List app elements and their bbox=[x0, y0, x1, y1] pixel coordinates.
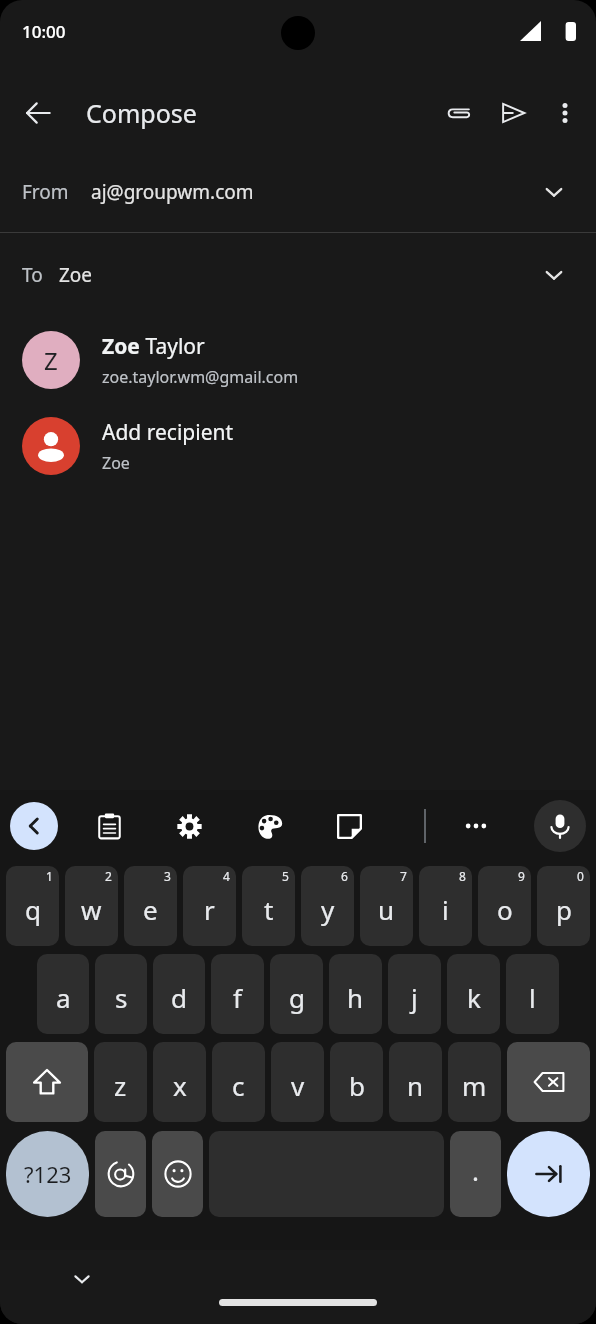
button[interactable]: t bbox=[242, 866, 295, 946]
button[interactable]: Send bbox=[486, 86, 540, 140]
button[interactable]: w bbox=[65, 866, 118, 946]
button[interactable]: Back bbox=[12, 87, 64, 139]
staticText: w bbox=[81, 892, 102, 927]
button[interactable]: e bbox=[124, 866, 177, 946]
button[interactable]: Theme bbox=[246, 803, 292, 849]
staticText: Add recipient bbox=[102, 418, 234, 447]
staticText: 7 bbox=[400, 868, 407, 884]
button[interactable]: l bbox=[506, 954, 559, 1034]
staticText: y bbox=[321, 892, 335, 927]
staticText: 10:00 bbox=[22, 20, 66, 43]
staticText: j bbox=[411, 980, 418, 1015]
button[interactable]: More tools bbox=[450, 800, 502, 852]
button[interactable]: s bbox=[95, 954, 147, 1034]
button[interactable]: Expand toolbar bbox=[10, 802, 58, 850]
button[interactable]: r bbox=[183, 866, 236, 946]
button[interactable]: ?123 bbox=[6, 1131, 89, 1217]
staticText: Taylor bbox=[140, 332, 205, 361]
staticText: q bbox=[25, 892, 41, 927]
staticText: z bbox=[114, 1068, 127, 1103]
staticText: 4 bbox=[223, 868, 230, 884]
staticText: d bbox=[171, 980, 187, 1015]
staticText: t bbox=[264, 892, 274, 927]
staticText: a bbox=[56, 980, 71, 1015]
button[interactable]: Add recipient bbox=[0, 403, 596, 489]
button[interactable]: m bbox=[448, 1042, 501, 1122]
staticText: 3 bbox=[164, 868, 171, 884]
staticText: aj@groupwm.com bbox=[91, 179, 254, 205]
staticText: n bbox=[407, 1068, 424, 1103]
button[interactable]: a bbox=[37, 954, 89, 1034]
button[interactable]: More options bbox=[540, 88, 590, 138]
staticText: 1 bbox=[46, 868, 53, 884]
button[interactable]: From bbox=[0, 152, 596, 232]
button[interactable]: v bbox=[271, 1042, 324, 1122]
staticText: zoe.taylor.wm@gmail.com bbox=[102, 366, 299, 388]
button[interactable]: j bbox=[388, 954, 441, 1034]
staticText: k bbox=[467, 980, 481, 1015]
staticText: To bbox=[22, 262, 43, 288]
staticText: g bbox=[289, 980, 305, 1015]
staticText: Compose bbox=[86, 96, 197, 130]
staticText: f bbox=[233, 980, 242, 1015]
button[interactable]: k bbox=[447, 954, 500, 1034]
staticText: m bbox=[462, 1068, 487, 1103]
staticText: b bbox=[349, 1068, 365, 1103]
staticText: e bbox=[143, 892, 158, 927]
staticText: l bbox=[529, 980, 536, 1015]
button[interactable]: q bbox=[6, 866, 59, 946]
staticText: c bbox=[232, 1068, 245, 1103]
staticText: i bbox=[442, 892, 449, 927]
staticText: 5 bbox=[282, 868, 289, 884]
button[interactable]: Backspace bbox=[507, 1042, 590, 1122]
button[interactable]: h bbox=[329, 954, 382, 1034]
staticText: p bbox=[556, 892, 572, 927]
staticText: h bbox=[347, 980, 364, 1015]
staticText: 8 bbox=[459, 868, 466, 884]
button[interactable]: At sign bbox=[95, 1131, 146, 1217]
button[interactable]: z bbox=[94, 1042, 147, 1122]
button[interactable]: Attach file bbox=[432, 86, 486, 140]
button[interactable]: i bbox=[419, 866, 472, 946]
button[interactable]: Clipboard bbox=[86, 803, 132, 849]
button[interactable]: Hide keyboard bbox=[62, 1259, 102, 1299]
button[interactable]: u bbox=[360, 866, 413, 946]
button[interactable]: Voice input bbox=[534, 800, 586, 852]
button[interactable]: To bbox=[0, 233, 596, 317]
button[interactable]: Next field bbox=[507, 1131, 590, 1217]
staticText: ?123 bbox=[24, 1159, 72, 1189]
staticText: v bbox=[291, 1068, 305, 1103]
button[interactable]: Settings bbox=[166, 803, 212, 849]
button[interactable]: x bbox=[153, 1042, 206, 1122]
staticText: 9 bbox=[518, 868, 525, 884]
button[interactable]: Stickers bbox=[326, 803, 372, 849]
button[interactable]: . bbox=[450, 1131, 501, 1217]
button[interactable]: f bbox=[211, 954, 264, 1034]
staticText: . bbox=[472, 1153, 479, 1188]
button[interactable]: b bbox=[330, 1042, 383, 1122]
staticText: Zoe bbox=[102, 332, 140, 361]
staticText: Z bbox=[44, 344, 58, 377]
button[interactable]: Emoji bbox=[152, 1131, 203, 1217]
button[interactable]: n bbox=[389, 1042, 442, 1122]
staticText: o bbox=[497, 892, 513, 927]
staticText: Zoe bbox=[59, 262, 93, 288]
staticText: From bbox=[22, 179, 69, 205]
staticText: r bbox=[204, 892, 215, 927]
staticText: s bbox=[115, 980, 128, 1015]
staticText: 2 bbox=[105, 868, 112, 884]
button[interactable]: Shift bbox=[6, 1042, 88, 1122]
button[interactable]: p bbox=[537, 866, 590, 946]
button[interactable]: c bbox=[212, 1042, 265, 1122]
staticText: u bbox=[378, 892, 395, 927]
staticText: 0 bbox=[577, 868, 584, 884]
button[interactable]: o bbox=[478, 866, 531, 946]
staticText: Zoe bbox=[102, 452, 130, 474]
button[interactable]: Z bbox=[0, 317, 596, 403]
button[interactable]: d bbox=[153, 954, 205, 1034]
button[interactable]: y bbox=[301, 866, 354, 946]
staticText: 6 bbox=[341, 868, 348, 884]
staticText: x bbox=[173, 1068, 187, 1103]
button[interactable]: g bbox=[270, 954, 323, 1034]
